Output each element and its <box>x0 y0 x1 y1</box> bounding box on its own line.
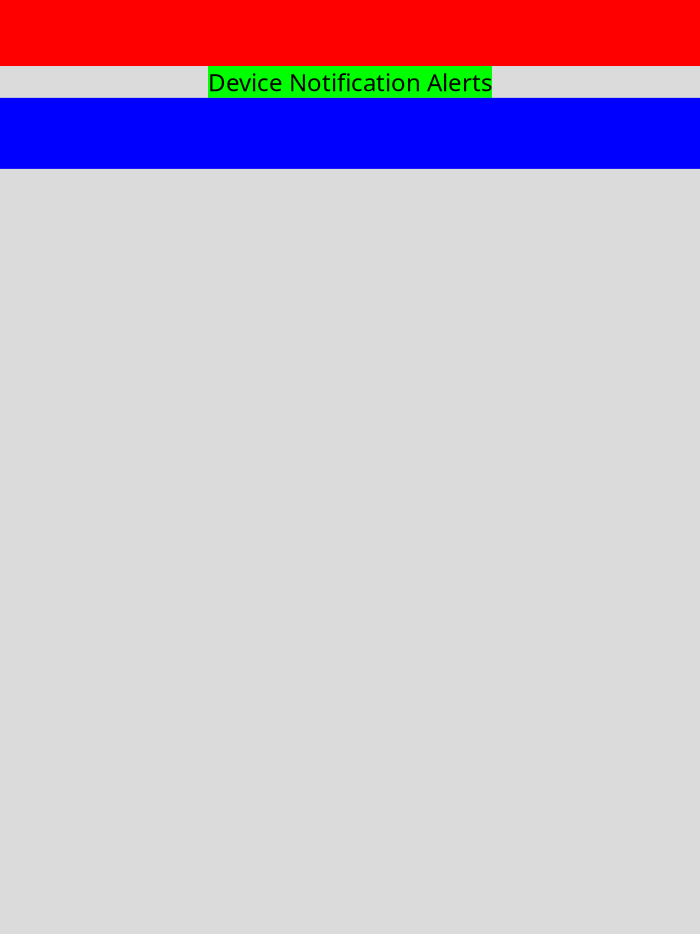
staticText: Device Notification Alerts <box>208 66 492 98</box>
